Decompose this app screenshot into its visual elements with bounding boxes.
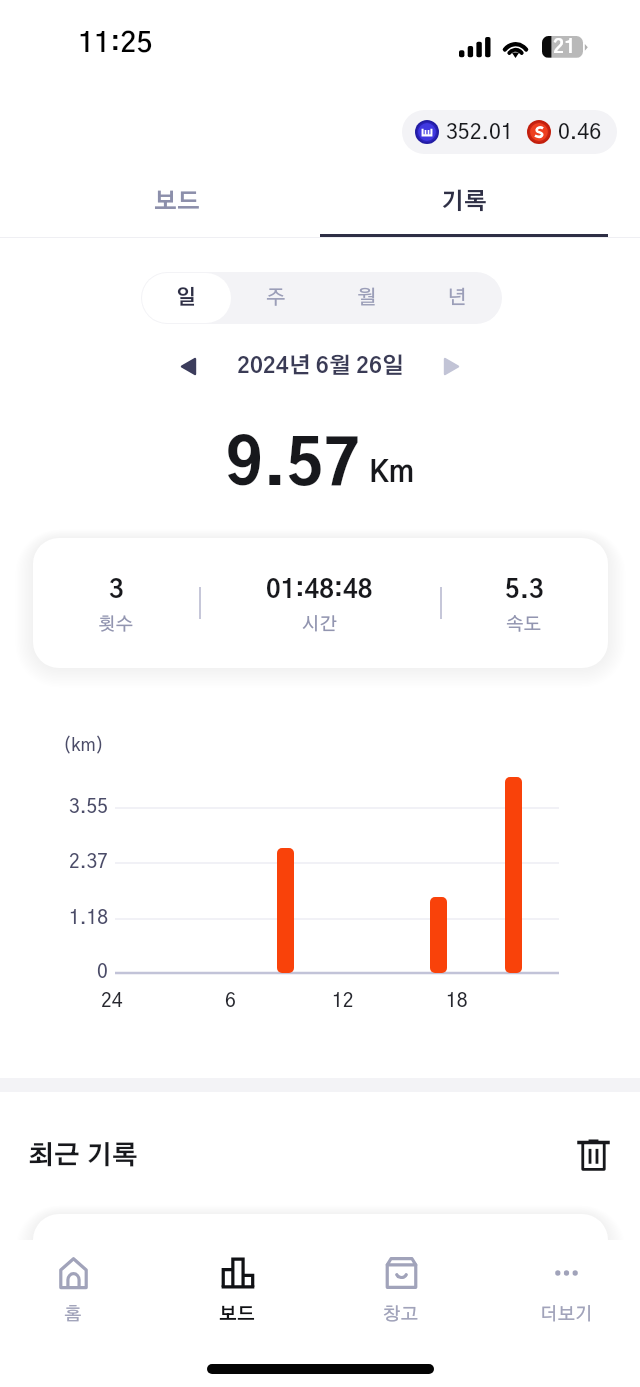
staticText: 월 [357,288,377,308]
button[interactable]: 보드 [157,1248,317,1340]
staticText: 일 [176,288,196,308]
staticText: 창고 [383,1306,419,1324]
button[interactable]: 월 [321,272,412,324]
button[interactable]: 일 [141,272,230,324]
button[interactable]: 더보기 [486,1248,640,1340]
button[interactable]: 창고 [321,1248,481,1340]
staticText: 5.3 [505,578,544,603]
staticText: 0.46 [558,122,602,143]
button[interactable]: Next day [429,344,473,388]
staticText: 352.01 [446,122,513,143]
staticText: 1.18 [69,909,108,928]
button[interactable]: Delete records [568,1129,618,1179]
staticText: 3.55 [69,798,108,817]
button[interactable]: 보드 [33,170,320,235]
staticText: 12 [332,992,354,1011]
staticText: 0 [97,963,108,982]
staticText: 01:48:48 [266,578,373,603]
staticText: 더보기 [540,1306,593,1324]
staticText: 횟수 [98,616,134,634]
button[interactable]: 년 [412,272,502,324]
button[interactable]: 홈 [0,1248,153,1340]
button[interactable]: 기록 [320,170,608,235]
staticText: 3 [109,578,124,603]
button[interactable] [33,1214,608,1274]
staticText: 9.57 [226,436,361,498]
staticText: 18 [446,992,468,1011]
staticText: 6 [225,992,236,1011]
staticText: 시간 [302,616,338,634]
staticText: 최근 기록 [28,1143,138,1169]
staticText: 보드 [154,191,200,214]
staticText: 기록 [441,191,487,214]
button[interactable]: Previous day [166,344,210,388]
staticText: 21 [553,38,576,57]
staticText: Km [369,459,415,488]
staticText: 홈 [64,1306,82,1324]
staticText: 2.37 [69,853,108,872]
staticText: 2024년 6월 26일 [237,355,404,377]
staticText: 주 [266,288,286,308]
staticText: 보드 [219,1306,255,1324]
staticText: 11:25 [78,30,153,58]
staticText: (km) [63,737,104,755]
staticText: 속도 [506,616,542,634]
button[interactable]: 352.01 [402,110,617,154]
staticText: 년 [447,288,467,308]
button[interactable]: 주 [230,272,321,324]
staticText: 24 [101,992,123,1011]
